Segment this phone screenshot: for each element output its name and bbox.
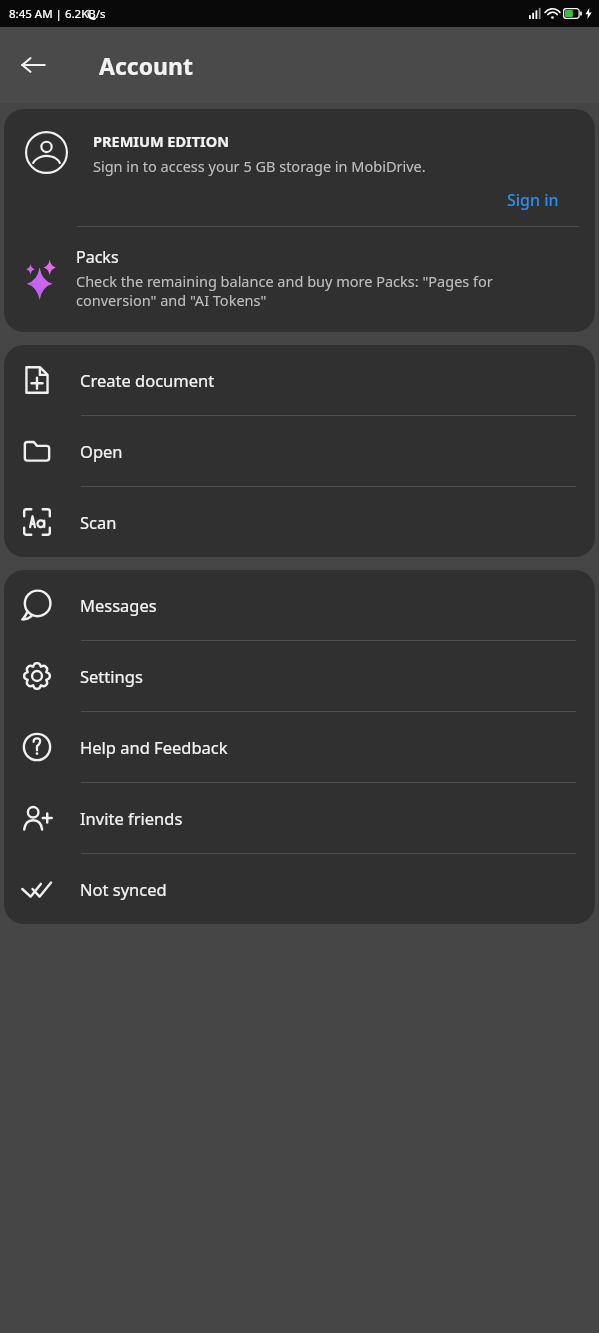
staticText: Invite friends — [80, 807, 183, 829]
button[interactable]: Back — [9, 41, 57, 89]
staticText: Create document — [80, 369, 215, 391]
staticText: 8:45 AM | 6.2KB/s — [9, 6, 106, 22]
staticText: Not synced — [80, 878, 167, 900]
button[interactable]: PREMIUM EDITION — [4, 109, 595, 215]
staticText: PREMIUM EDITION — [93, 131, 229, 151]
staticText: Open — [80, 440, 123, 462]
button[interactable]: Sign in — [501, 185, 565, 215]
staticText: Account — [99, 50, 193, 81]
staticText: Help and Feedback — [80, 736, 228, 758]
staticText: Packs — [76, 246, 119, 268]
button[interactable]: Create document — [4, 345, 595, 415]
staticText: Sign in — [507, 189, 559, 211]
button[interactable]: Messages — [4, 570, 595, 640]
button[interactable]: Help and Feedback — [4, 712, 595, 782]
staticText: Check the remaining balance and buy more… — [76, 271, 573, 310]
button[interactable]: Settings — [4, 641, 595, 711]
button[interactable]: Open — [4, 416, 595, 486]
staticText: Scan — [80, 511, 117, 533]
staticText: Sign in to access your 5 GB storage in M… — [93, 156, 426, 176]
button[interactable]: Packs — [4, 227, 595, 332]
button[interactable]: Scan — [4, 487, 595, 557]
button[interactable]: Invite friends — [4, 783, 595, 853]
staticText: Messages — [80, 594, 157, 616]
staticText: Settings — [80, 665, 143, 687]
button[interactable]: Not synced — [4, 854, 595, 924]
